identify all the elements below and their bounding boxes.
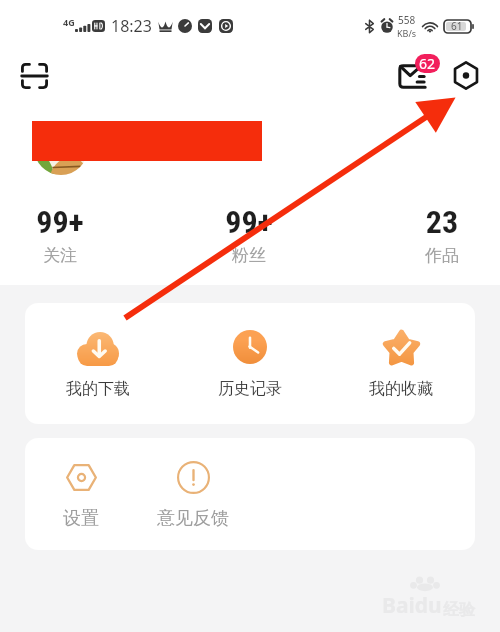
button[interactable]: 历史记录 xyxy=(195,303,305,424)
staticText: 经验 xyxy=(443,600,475,620)
button[interactable]: 99+ xyxy=(204,203,294,267)
staticText: 99+ xyxy=(204,203,294,241)
staticText: Baidu xyxy=(382,591,442,620)
staticText: 61 xyxy=(451,19,463,33)
button[interactable]: 意见反馈 xyxy=(138,438,248,550)
staticText: 关注 xyxy=(15,245,105,266)
staticText: 作品 xyxy=(397,245,487,266)
staticText: 设置 xyxy=(26,507,136,530)
button[interactable]: 99+ xyxy=(15,203,105,267)
button[interactable]: 设置 xyxy=(26,438,136,550)
staticText: 99+ xyxy=(15,203,105,241)
staticText: 18:23 xyxy=(111,15,152,37)
button[interactable] xyxy=(34,121,88,175)
staticText: 4G xyxy=(63,16,75,28)
staticText: 我的收藏 xyxy=(346,379,456,399)
staticText: 558 xyxy=(398,13,416,27)
staticText: 意见反馈 xyxy=(138,507,248,530)
button[interactable]: 我的下载 xyxy=(43,303,153,424)
staticText: 62 xyxy=(419,54,436,73)
staticText: KB/s xyxy=(397,27,417,39)
button[interactable]: 23 xyxy=(397,203,487,267)
staticText: 历史记录 xyxy=(195,379,305,399)
button[interactable]: Messages xyxy=(390,54,434,98)
button[interactable]: Scan QR code xyxy=(12,54,56,98)
button[interactable]: Settings xyxy=(444,53,488,97)
staticText: 粉丝 xyxy=(204,245,294,266)
button[interactable]: 我的收藏 xyxy=(346,303,456,424)
staticText: 23 xyxy=(397,203,487,241)
staticText: 我的下载 xyxy=(43,379,153,399)
